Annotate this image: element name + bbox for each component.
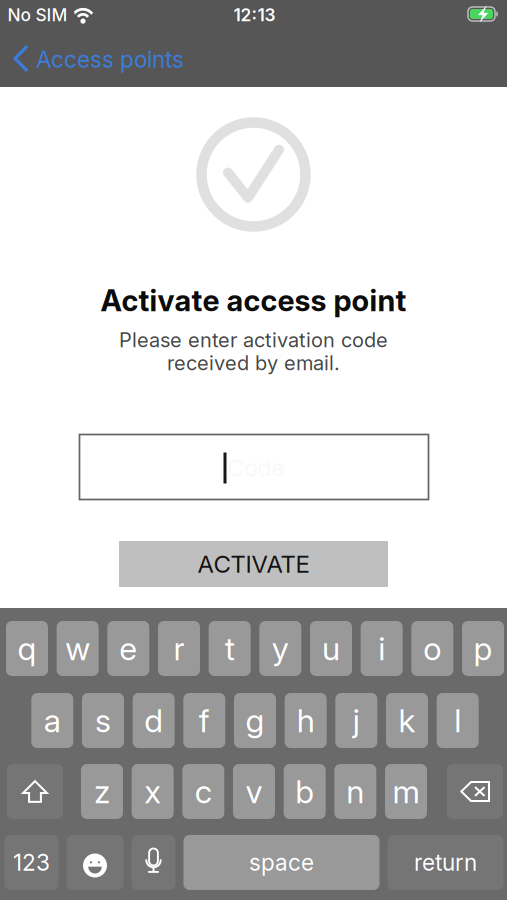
- staticText: u: [322, 629, 340, 668]
- button[interactable]: w: [57, 621, 99, 676]
- button[interactable]: Dictation: [131, 835, 175, 890]
- staticText: received by email.: [167, 351, 340, 375]
- button[interactable]: t: [209, 621, 251, 676]
- staticText: m: [392, 772, 419, 811]
- staticText: e: [119, 629, 137, 668]
- staticText: o: [423, 629, 441, 668]
- staticText: Activate access point: [100, 283, 406, 318]
- staticText: x: [144, 772, 161, 811]
- button[interactable]: l: [437, 693, 479, 748]
- staticText: j: [353, 701, 360, 740]
- staticText: i: [378, 629, 385, 668]
- button[interactable]: b: [284, 764, 326, 819]
- staticText: n: [346, 772, 364, 811]
- staticText: c: [195, 772, 212, 811]
- staticText: v: [245, 772, 262, 811]
- button[interactable]: e: [107, 621, 149, 676]
- button[interactable]: q: [6, 621, 48, 676]
- staticText: r: [173, 629, 184, 668]
- button[interactable]: Access points: [0, 36, 196, 87]
- staticText: f: [199, 701, 210, 740]
- staticText: d: [144, 701, 163, 740]
- staticText: 12:13: [233, 4, 275, 25]
- staticText: l: [454, 701, 461, 740]
- staticText: s: [95, 701, 111, 740]
- button[interactable]: a: [31, 693, 73, 748]
- button[interactable]: s: [82, 693, 124, 748]
- button[interactable]: Delete: [447, 764, 503, 819]
- staticText: ACTIVATE: [197, 549, 309, 578]
- button[interactable]: n: [334, 764, 376, 819]
- staticText: b: [295, 772, 314, 811]
- staticText: Access points: [36, 46, 184, 73]
- button[interactable]: i: [361, 621, 403, 676]
- staticText: y: [272, 629, 289, 668]
- button[interactable]: ACTIVATE: [119, 541, 388, 587]
- button[interactable]: u: [310, 621, 352, 676]
- staticText: t: [225, 629, 235, 668]
- button[interactable]: f: [183, 693, 225, 748]
- staticText: k: [398, 701, 415, 740]
- staticText: z: [94, 772, 110, 811]
- button[interactable]: return: [387, 835, 503, 890]
- staticText: space: [249, 849, 314, 876]
- button[interactable]: space: [183, 835, 379, 890]
- button[interactable]: Emoji: [66, 835, 123, 890]
- button[interactable]: y: [259, 621, 301, 676]
- button[interactable]: g: [234, 693, 276, 748]
- button[interactable]: h: [285, 693, 327, 748]
- button[interactable]: m: [385, 764, 427, 819]
- button[interactable]: d: [133, 693, 175, 748]
- staticText: p: [473, 629, 492, 668]
- button[interactable]: r: [158, 621, 200, 676]
- button[interactable]: z: [81, 764, 123, 819]
- staticText: w: [65, 629, 90, 668]
- button[interactable]: k: [386, 693, 428, 748]
- staticText: return: [414, 849, 477, 876]
- button[interactable]: 123: [4, 835, 58, 890]
- staticText: q: [17, 629, 36, 668]
- button[interactable]: p: [462, 621, 504, 676]
- staticText: a: [44, 701, 61, 740]
- staticText: 123: [13, 849, 50, 876]
- button[interactable]: o: [411, 621, 453, 676]
- staticText: g: [245, 701, 264, 740]
- button[interactable]: Shift: [7, 764, 63, 819]
- button[interactable]: x: [132, 764, 174, 819]
- button[interactable]: c: [182, 764, 224, 819]
- button[interactable]: j: [335, 693, 377, 748]
- staticText: Please enter activation code: [119, 328, 388, 352]
- staticText: No SIM: [7, 4, 67, 25]
- button[interactable]: v: [233, 764, 275, 819]
- staticText: h: [297, 701, 315, 740]
